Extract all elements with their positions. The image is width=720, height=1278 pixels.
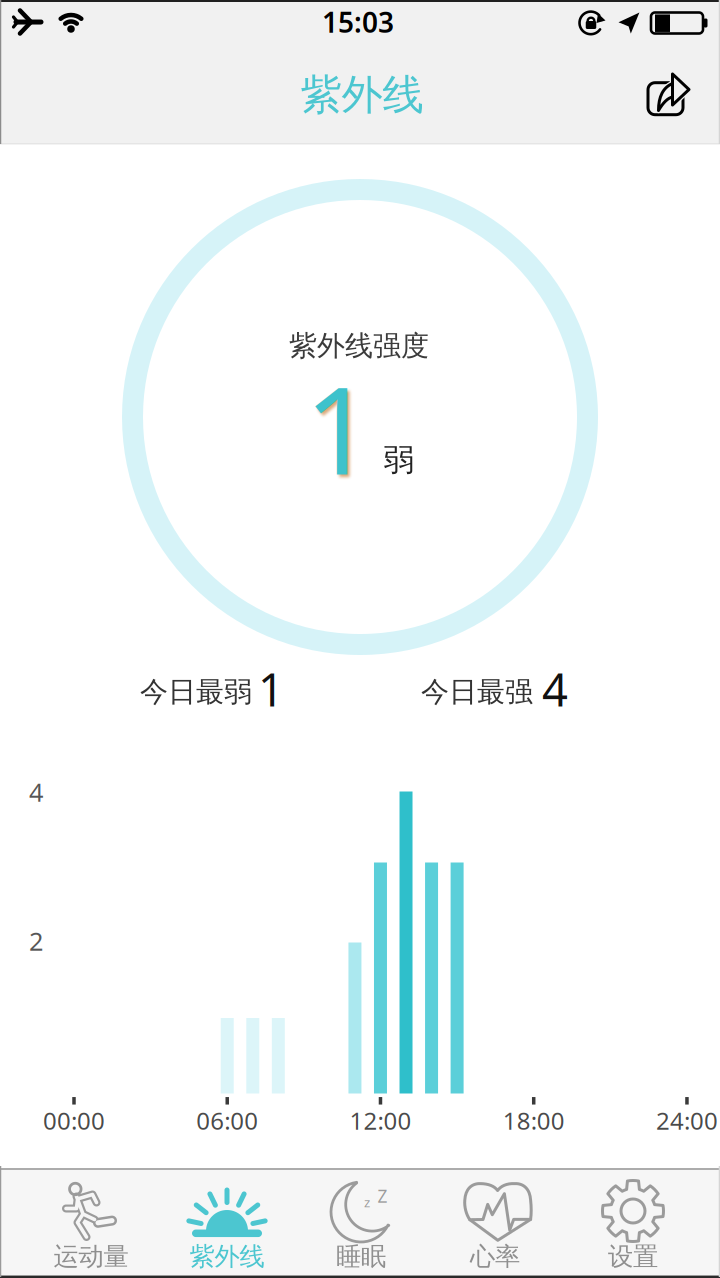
staticText: 1 (258, 659, 284, 719)
staticText: 18:00 (503, 1105, 565, 1136)
staticText: 2 (29, 924, 43, 958)
button[interactable]: 运动量 (23, 1167, 159, 1277)
staticText: 运动量 (53, 1241, 128, 1272)
button[interactable]: Share (620, 50, 708, 138)
staticText: 12:00 (349, 1105, 411, 1136)
staticText: 紫外线强度 (289, 329, 429, 363)
button[interactable]: 紫外线 (159, 1167, 295, 1277)
staticText: 今日最强 (421, 675, 533, 709)
staticText: 设置 (608, 1241, 658, 1272)
button[interactable]: 心率 (427, 1167, 563, 1277)
button[interactable]: z (293, 1167, 429, 1277)
staticText: Z (377, 1184, 387, 1207)
button[interactable]: 设置 (565, 1167, 701, 1277)
staticText: 4 (542, 659, 568, 719)
staticText: 24:00 (656, 1105, 718, 1136)
staticText: 弱 (383, 441, 414, 479)
staticText: z (364, 1193, 370, 1211)
staticText: 睡眠 (336, 1241, 386, 1272)
staticText: 4 (29, 775, 43, 809)
staticText: 1 (304, 348, 373, 508)
staticText: 紫外线 (189, 1241, 264, 1272)
staticText: 06:00 (196, 1105, 258, 1136)
staticText: 紫外线 (300, 70, 423, 120)
staticText: 00:00 (43, 1105, 105, 1136)
staticText: 心率 (470, 1241, 520, 1272)
staticText: 15:03 (322, 3, 394, 41)
staticText: 今日最弱 (140, 675, 252, 709)
